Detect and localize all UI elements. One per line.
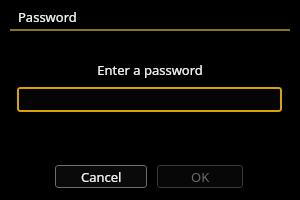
staticText: Cancel: [81, 168, 122, 186]
staticText: OK: [191, 168, 210, 186]
staticText: Password: [18, 8, 77, 26]
button[interactable]: [17, 87, 282, 112]
staticText: Enter a password: [97, 61, 203, 79]
button[interactable]: Cancel: [55, 165, 147, 188]
button[interactable]: OK: [157, 165, 243, 188]
